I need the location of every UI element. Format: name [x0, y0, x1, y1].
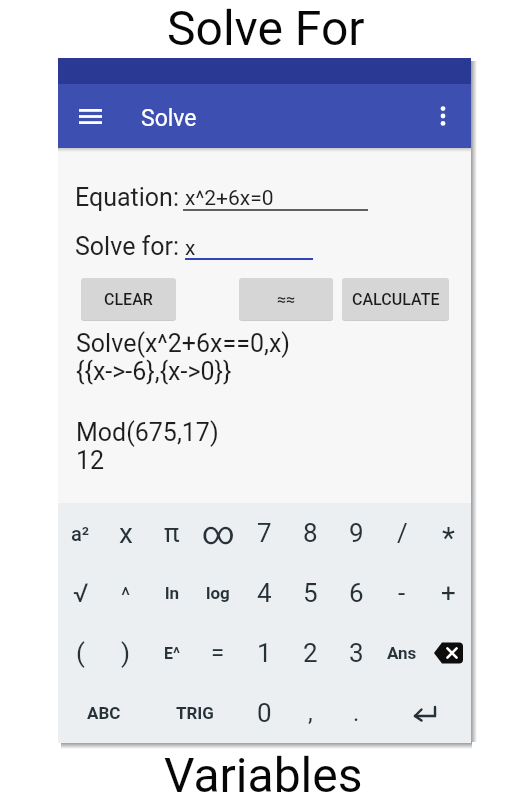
staticText: =	[211, 639, 225, 667]
staticText: Solve	[141, 105, 197, 132]
staticText: 3	[349, 638, 364, 668]
button[interactable]	[425, 623, 471, 683]
button[interactable]: a²	[58, 503, 103, 563]
staticText: .	[353, 699, 360, 727]
button[interactable]: 6	[333, 563, 379, 623]
staticText: Mod(675,17)	[76, 418, 219, 447]
staticText: TRIG	[176, 703, 214, 723]
staticText: x	[119, 517, 133, 550]
staticText: x	[185, 236, 196, 261]
staticText: 0	[257, 698, 272, 728]
button[interactable]: -	[379, 563, 425, 623]
button[interactable]: )	[103, 623, 149, 683]
button[interactable]: ,	[287, 683, 333, 743]
staticText: )	[121, 638, 131, 668]
button[interactable]: Ans	[379, 623, 425, 683]
staticText: √	[73, 578, 89, 608]
staticText: x^2+6x=0	[185, 186, 274, 211]
staticText: ln	[165, 583, 180, 603]
staticText: 5	[303, 578, 318, 608]
button[interactable]: 0	[241, 683, 287, 743]
staticText: 8	[303, 518, 318, 548]
staticText: 2	[303, 638, 318, 668]
button[interactable]: 7	[241, 503, 287, 563]
staticText: -	[398, 578, 406, 608]
button[interactable]: √	[58, 563, 103, 623]
staticText: Solve For	[167, 0, 365, 56]
staticText: Variables	[164, 747, 363, 800]
staticText: π	[164, 518, 180, 548]
button[interactable]	[70, 96, 110, 136]
button[interactable]: 9	[333, 503, 379, 563]
staticText: ∞	[202, 514, 235, 552]
button[interactable]	[185, 228, 313, 261]
staticText: 6	[349, 578, 364, 608]
staticText: *	[442, 520, 455, 555]
staticText: ,	[308, 699, 313, 727]
button[interactable]: ∞	[195, 503, 241, 563]
button[interactable]: (	[58, 623, 103, 683]
button[interactable]: +	[425, 563, 471, 623]
staticText: CLEAR	[104, 290, 153, 309]
button[interactable]: =	[195, 623, 241, 683]
staticText: Solve(x^2+6x==0,x)	[76, 329, 291, 358]
button[interactable]: TRIG	[149, 683, 241, 743]
button[interactable]	[425, 98, 461, 134]
button[interactable]: ^	[103, 563, 149, 623]
staticText: ABC	[87, 703, 121, 723]
staticText: Equation:	[75, 183, 179, 212]
button[interactable]: E^	[149, 623, 195, 683]
staticText: E^	[164, 644, 180, 663]
staticText: {{x->-6},{x->0}}	[76, 357, 232, 386]
staticText: 12	[76, 446, 105, 475]
button[interactable]: 3	[333, 623, 379, 683]
staticText: (	[76, 638, 85, 668]
staticText: /	[397, 518, 408, 548]
staticText: 7	[257, 518, 272, 548]
staticText: a²	[71, 522, 90, 545]
button[interactable]: CALCULATE	[342, 278, 449, 320]
button[interactable]: .	[333, 683, 379, 743]
button[interactable]: π	[149, 503, 195, 563]
staticText: ≈≈	[277, 290, 296, 309]
button[interactable]: 4	[241, 563, 287, 623]
button[interactable]	[183, 179, 368, 212]
staticText: Solve for:	[75, 232, 180, 261]
button[interactable]: 1	[241, 623, 287, 683]
staticText: 1	[257, 638, 272, 668]
staticText: 9	[349, 518, 364, 548]
button[interactable]: ABC	[58, 683, 149, 743]
staticText: +	[441, 578, 456, 608]
staticText: ^	[121, 583, 131, 609]
staticText: CALCULATE	[352, 290, 440, 309]
staticText: 4	[257, 578, 272, 608]
button[interactable]: 2	[287, 623, 333, 683]
staticText: Ans	[387, 643, 417, 663]
button[interactable]: CLEAR	[81, 278, 176, 320]
button[interactable]: ≈≈	[239, 278, 333, 320]
button[interactable]: *	[425, 503, 471, 563]
staticText: log	[206, 583, 230, 603]
button[interactable]: ln	[149, 563, 195, 623]
button[interactable]: 5	[287, 563, 333, 623]
button[interactable]: /	[379, 503, 425, 563]
button[interactable]: x	[103, 503, 149, 563]
button[interactable]: 8	[287, 503, 333, 563]
button[interactable]	[379, 683, 471, 743]
button[interactable]: log	[195, 563, 241, 623]
